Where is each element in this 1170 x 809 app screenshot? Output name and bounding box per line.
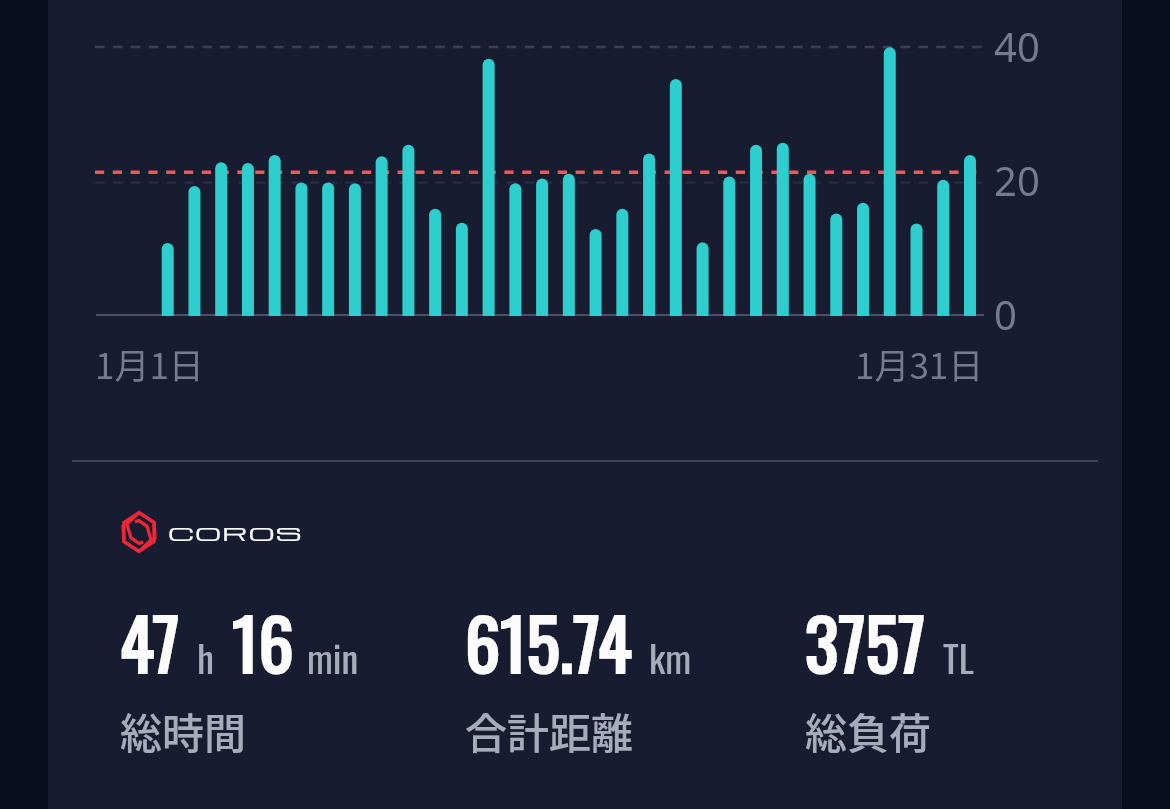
staticText: 16 [232,589,294,693]
staticText: COROS [168,521,303,545]
staticText: 1月31日 [855,338,984,389]
staticText: 0 [994,287,1017,341]
staticText: 40 [994,19,1040,73]
staticText: 3757 [805,589,926,693]
button[interactable]: 615.74 [465,589,692,693]
staticText: 47 [120,589,180,693]
staticText: h [197,629,214,685]
button[interactable]: 3757 [805,589,974,693]
staticText: TL [943,629,974,685]
staticText: 1月1日 [95,338,204,389]
button[interactable]: 47 [120,589,359,693]
staticText: 総時間 [120,700,247,761]
staticText: km [649,629,692,685]
staticText: 20 [994,153,1040,207]
staticText: 615.74 [465,589,632,693]
staticText: min [307,629,359,685]
button[interactable]: COROS [120,511,260,553]
staticText: 総負荷 [805,700,932,761]
staticText: 合計距離 [465,700,634,761]
